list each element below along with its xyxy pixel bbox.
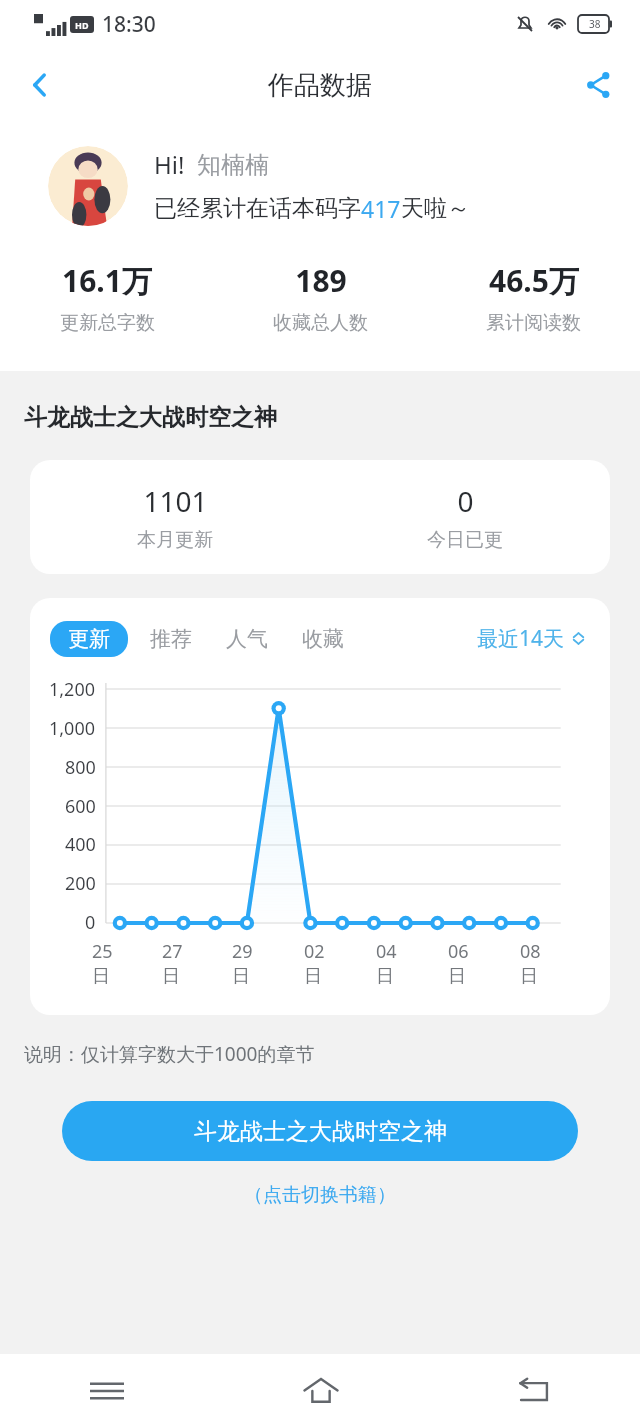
staticText: 本月更新	[137, 528, 213, 552]
staticText: 已经累计在话本码字	[154, 194, 361, 223]
staticText: 知楠楠	[197, 150, 269, 180]
staticText: 800	[65, 755, 96, 780]
staticText: 最近14天	[477, 624, 565, 653]
staticText: 0	[85, 910, 96, 935]
staticText: 收藏总人数	[273, 311, 368, 335]
staticText: 更新总字数	[60, 311, 155, 335]
staticText: 25日	[92, 939, 127, 987]
staticText: 400	[65, 832, 96, 857]
button[interactable]: Recent apps	[0, 1354, 214, 1428]
staticText: Hi!	[154, 148, 185, 181]
staticText: 作品数据	[268, 69, 372, 102]
button[interactable]: 更新	[50, 621, 128, 657]
button[interactable]: 46.5万	[427, 260, 640, 335]
staticText: HD	[75, 19, 89, 31]
staticText: 累计阅读数	[486, 311, 581, 335]
staticText: 29日	[232, 939, 268, 987]
staticText: 斗龙战士之大战时空之神	[24, 403, 277, 432]
staticText: 今日已更	[427, 528, 503, 552]
button[interactable]: Back	[14, 59, 66, 111]
staticText: 0	[457, 482, 474, 520]
staticText: 更新	[68, 626, 110, 652]
staticText: 417	[361, 193, 401, 224]
staticText: 46.5万	[489, 260, 579, 301]
staticText: 1,200	[49, 677, 96, 702]
button[interactable]: Back	[427, 1354, 640, 1428]
staticText: 189	[295, 260, 347, 301]
staticText: 02日	[304, 939, 340, 987]
staticText: 天啦～	[401, 194, 470, 223]
button[interactable]: Hi!	[48, 146, 640, 226]
staticText: 16.1万	[62, 260, 152, 301]
button[interactable]: 189	[214, 260, 427, 335]
staticText: 推荐	[150, 626, 192, 652]
button[interactable]: Share	[572, 59, 624, 111]
staticText: 200	[65, 871, 96, 896]
button[interactable]: 最近14天	[473, 620, 590, 657]
staticText: 08日	[520, 939, 556, 987]
staticText: 600	[65, 794, 96, 819]
staticText: 1,000	[49, 716, 96, 741]
staticText: 收藏	[302, 626, 344, 652]
staticText: 06日	[448, 939, 484, 987]
staticText: 27日	[162, 939, 197, 987]
button[interactable]: 推荐	[146, 621, 196, 657]
button[interactable]: 人气	[222, 621, 272, 657]
button[interactable]: 1101	[30, 460, 610, 574]
staticText: 18:30	[102, 10, 156, 39]
button[interactable]: 收藏	[298, 621, 348, 657]
staticText: 斗龙战士之大战时空之神	[194, 1117, 447, 1146]
button[interactable]: 斗龙战士之大战时空之神	[62, 1101, 578, 1161]
button[interactable]: 16.1万	[0, 260, 214, 335]
button[interactable]: Home	[214, 1354, 427, 1428]
staticText: 38	[589, 17, 601, 31]
staticText: 人气	[226, 626, 268, 652]
staticText: 04日	[376, 939, 412, 987]
staticText: 1101	[143, 482, 208, 520]
button[interactable]: （点击切换书籍）	[238, 1177, 402, 1213]
staticText: 说明：仅计算字数大于1000的章节	[24, 1041, 315, 1067]
